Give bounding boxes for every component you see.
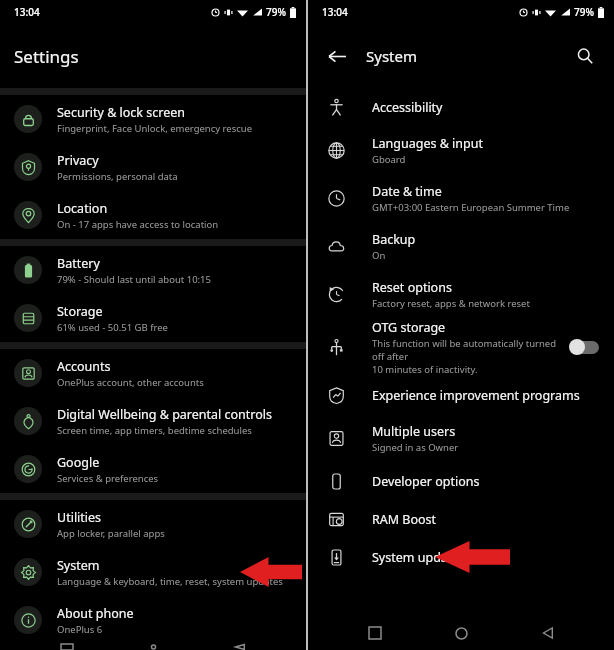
staticText: System <box>366 46 417 66</box>
button[interactable]: Digital Wellbeing & parental controls <box>0 397 306 445</box>
staticText: OnePlus account, other accounts <box>57 376 204 389</box>
staticText: Multiple users <box>372 423 456 440</box>
staticText: Date & time <box>372 183 442 200</box>
button[interactable]: Home <box>133 644 173 650</box>
staticText: Language & keyboard, time, reset, system… <box>57 575 283 588</box>
staticText: About phone <box>57 605 134 622</box>
staticText: Settings <box>14 45 79 68</box>
staticText: OTG storage <box>372 319 446 336</box>
button[interactable]: Home <box>441 616 481 650</box>
staticText: Privacy <box>57 152 99 169</box>
staticText: Backup <box>372 231 416 248</box>
button[interactable]: Backup <box>308 222 614 270</box>
button[interactable]: Privacy <box>0 143 306 191</box>
staticText: Location <box>57 200 108 217</box>
button[interactable]: Languages & input <box>308 126 614 174</box>
staticText: RAM Boost <box>372 511 437 528</box>
staticText: 13:04 <box>14 5 40 19</box>
button[interactable]: About phone <box>0 596 306 644</box>
button[interactable]: Storage <box>0 294 306 342</box>
staticText: On - 17 apps have access to location <box>57 218 219 231</box>
button[interactable]: Date & time <box>308 174 614 222</box>
button[interactable]: Multiple users <box>308 414 614 462</box>
button[interactable]: Developer options <box>308 462 614 500</box>
staticText: 79% <box>574 5 594 19</box>
button[interactable]: Recent apps <box>355 616 395 650</box>
staticText: Permissions, personal data <box>57 170 178 183</box>
button[interactable]: RAM Boost <box>308 500 614 538</box>
button[interactable]: Back <box>320 39 354 73</box>
button[interactable]: OTG storage <box>308 318 614 376</box>
staticText: 79% <box>266 5 286 19</box>
staticText: GMT+03:00 Eastern European Summer Time <box>372 201 570 214</box>
staticText: Security & lock screen <box>57 104 186 121</box>
staticText: Battery <box>57 255 100 272</box>
staticText: Accounts <box>57 358 111 375</box>
staticText: Utilities <box>57 509 102 526</box>
staticText: On <box>372 249 386 262</box>
staticText: OnePlus 6 <box>57 623 103 636</box>
staticText: Reset options <box>372 279 452 296</box>
button[interactable]: Battery <box>0 246 306 294</box>
button[interactable]: Experience improvement programs <box>308 376 614 414</box>
staticText: System updates <box>372 549 466 566</box>
staticText: 79% - Should last until about 10:15 <box>57 273 211 286</box>
staticText: Developer options <box>372 473 480 490</box>
staticText: App locker, parallel apps <box>57 527 165 540</box>
staticText: Services & preferences <box>57 472 159 485</box>
button[interactable]: Search <box>568 39 602 73</box>
button[interactable]: System <box>0 548 306 596</box>
button[interactable]: Utilities <box>0 500 306 548</box>
staticText: Screen time, app timers, bedtime schedul… <box>57 424 252 437</box>
button[interactable]: Reset options <box>308 270 614 318</box>
staticText: 61% used - 50.51 GB free <box>57 321 168 334</box>
button[interactable]: System updates <box>308 538 614 576</box>
button[interactable]: Accessibility <box>308 88 614 126</box>
staticText: Signed in as Owner <box>372 441 459 454</box>
button[interactable]: Back <box>528 616 568 650</box>
button[interactable]: OTG storage toggle <box>568 336 602 358</box>
staticText: Accessibility <box>372 99 443 116</box>
staticText: Storage <box>57 303 103 320</box>
staticText: Factory reset, apps & network reset <box>372 297 530 310</box>
button[interactable]: Recent apps <box>47 644 87 650</box>
staticText: 13:04 <box>322 5 348 19</box>
staticText: Gboard <box>372 153 406 166</box>
staticText: Experience improvement programs <box>372 387 580 404</box>
button[interactable]: Google <box>0 445 306 493</box>
button[interactable]: Security & lock screen <box>0 95 306 143</box>
button[interactable]: Accounts <box>0 349 306 397</box>
button[interactable]: Back <box>220 644 260 650</box>
staticText: Google <box>57 454 100 471</box>
staticText: Languages & input <box>372 135 483 152</box>
staticText: Digital Wellbeing & parental controls <box>57 406 273 423</box>
button[interactable]: Location <box>0 191 306 239</box>
staticText: System <box>57 557 100 574</box>
staticText: This function will be automatically turn… <box>372 337 562 376</box>
staticText: Fingerprint, Face Unlock, emergency resc… <box>57 122 253 135</box>
